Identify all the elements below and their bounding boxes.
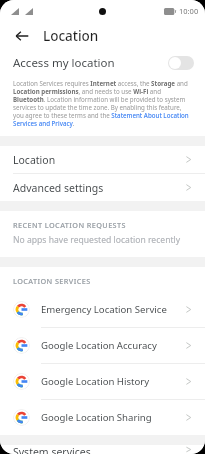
staticText: RECENT LOCATION REQUESTS [13, 220, 126, 230]
staticText: 10:00 [179, 6, 199, 16]
button[interactable]: Back [12, 26, 32, 46]
staticText: Google Location Accuracy [41, 339, 157, 352]
staticText: Google Location Sharing [41, 411, 152, 424]
button[interactable]: Google Location Accuracy [0, 328, 205, 363]
staticText: Location Services requires Internet acce… [13, 79, 193, 127]
button[interactable]: Access my location toggle [168, 56, 194, 70]
button[interactable]: Google Location Sharing [0, 400, 205, 435]
button[interactable]: System services [0, 445, 205, 454]
button[interactable]: Advanced settings [0, 174, 205, 201]
button[interactable]: Access my location [0, 49, 205, 77]
staticText: Google Location History [41, 375, 150, 388]
staticText: LOCATION SERVICES [13, 276, 91, 286]
staticText: No apps have requested location recently [13, 234, 181, 246]
staticText: Location [43, 27, 99, 45]
staticText: Access my location [13, 55, 115, 71]
staticText: Location [13, 153, 56, 167]
button[interactable]: Location [0, 146, 205, 173]
staticText: Emergency Location Service [41, 303, 167, 316]
staticText: Advanced settings [13, 181, 104, 195]
staticText: System services [13, 445, 91, 454]
button[interactable]: Emergency Location Service [0, 292, 205, 327]
button[interactable]: Google Location History [0, 364, 205, 399]
